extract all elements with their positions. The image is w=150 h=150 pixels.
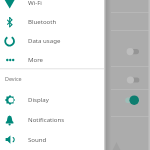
staticText: Data usage	[28, 36, 61, 44]
staticText: Device	[5, 75, 22, 82]
staticText: More	[28, 55, 44, 63]
button[interactable]	[0, 91, 103, 109]
staticText: Wi-Fi	[28, 0, 42, 6]
button[interactable]	[0, 32, 103, 50]
button[interactable]	[0, 0, 103, 18]
button[interactable]	[121, 94, 147, 107]
button[interactable]	[0, 51, 103, 69]
button[interactable]	[0, 110, 103, 128]
staticText: Sound	[28, 135, 47, 143]
button[interactable]	[115, 44, 141, 57]
button[interactable]	[0, 13, 103, 31]
button[interactable]	[0, 130, 103, 148]
staticText: Bluetooth	[28, 17, 57, 25]
staticText: Display	[28, 95, 49, 103]
button[interactable]	[115, 73, 141, 86]
staticText: Notifications	[28, 115, 65, 123]
